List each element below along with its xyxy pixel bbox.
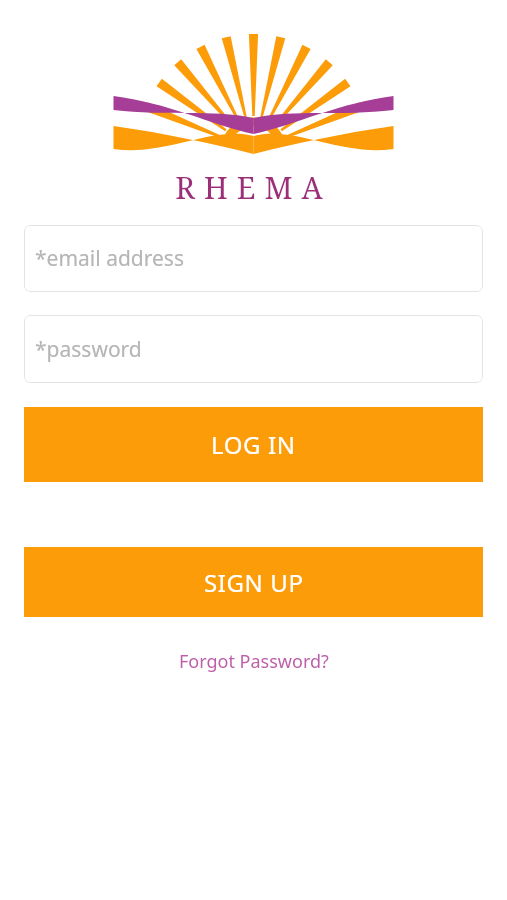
staticText: SIGN UP bbox=[204, 566, 304, 599]
button[interactable]: *password bbox=[24, 315, 483, 383]
button[interactable]: SIGN UP bbox=[24, 547, 483, 617]
staticText: RHEMA bbox=[0, 167, 507, 208]
button[interactable]: LOG IN bbox=[24, 407, 483, 482]
staticText: LOG IN bbox=[211, 428, 296, 461]
button[interactable]: Forgot Password? bbox=[167, 645, 341, 678]
staticText: *password bbox=[35, 335, 142, 364]
button[interactable]: *email address bbox=[24, 225, 483, 292]
staticText: *email address bbox=[35, 244, 184, 273]
staticText: Forgot Password? bbox=[179, 649, 329, 674]
